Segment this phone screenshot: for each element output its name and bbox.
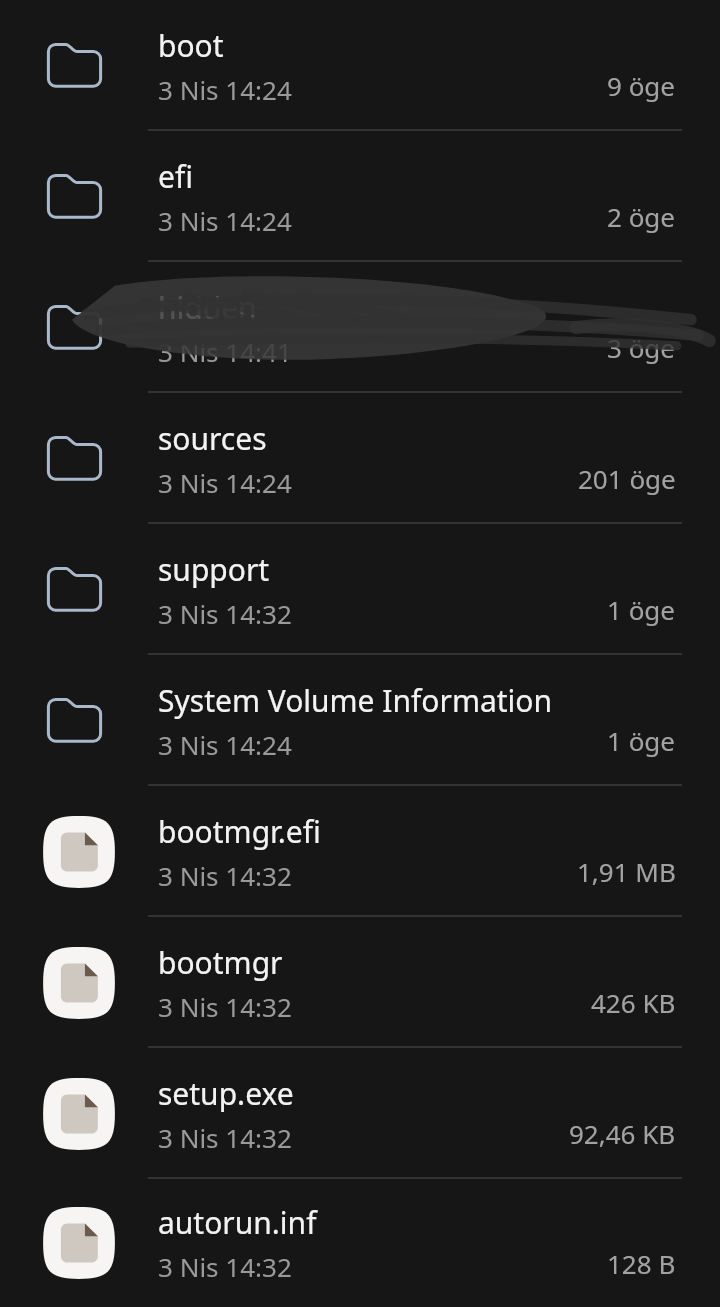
staticText: 1 öge bbox=[607, 723, 676, 758]
staticText: 92,46 KB bbox=[569, 1116, 676, 1151]
staticText: hidden bbox=[158, 287, 257, 328]
staticText: autorun.inf bbox=[158, 1202, 317, 1243]
staticText: 3 Nis 14:24 bbox=[158, 72, 292, 107]
staticText: 3 öge bbox=[607, 330, 676, 365]
staticText: support bbox=[158, 549, 270, 590]
button[interactable]: Folder bbox=[0, 393, 720, 524]
button[interactable]: File bbox=[0, 786, 720, 917]
other: Folder bbox=[43, 30, 115, 102]
staticText: 3 Nis 14:32 bbox=[158, 596, 292, 631]
other: File bbox=[42, 815, 116, 889]
staticText: 1 öge bbox=[607, 592, 676, 627]
button[interactable]: Folder bbox=[0, 655, 720, 786]
staticText: 3 Nis 14:24 bbox=[158, 203, 292, 238]
staticText: 128 B bbox=[607, 1246, 676, 1281]
staticText: 9 öge bbox=[607, 68, 676, 103]
button[interactable]: File bbox=[0, 1179, 720, 1307]
other: Folder bbox=[43, 292, 115, 364]
button[interactable]: Folder bbox=[0, 131, 720, 262]
button[interactable]: Folder bbox=[0, 0, 720, 131]
staticText: bootmgr bbox=[158, 942, 283, 983]
other: File bbox=[42, 946, 116, 1020]
staticText: 2 öge bbox=[607, 199, 676, 234]
staticText: System Volume Information bbox=[158, 680, 553, 721]
staticText: boot bbox=[158, 25, 224, 66]
staticText: 3 Nis 14:32 bbox=[158, 989, 292, 1024]
staticText: 3 Nis 14:32 bbox=[158, 858, 292, 893]
button[interactable]: Folder bbox=[0, 524, 720, 655]
button[interactable]: File bbox=[0, 1048, 720, 1179]
other: File bbox=[42, 1206, 116, 1280]
staticText: 3 Nis 14:41 bbox=[158, 334, 292, 369]
staticText: 3 Nis 14:24 bbox=[158, 465, 292, 500]
other: Folder bbox=[43, 423, 115, 495]
staticText: 3 Nis 14:24 bbox=[158, 727, 292, 762]
staticText: setup.exe bbox=[158, 1073, 294, 1114]
staticText: 3 Nis 14:32 bbox=[158, 1249, 292, 1284]
staticText: 1,91 MB bbox=[577, 854, 676, 889]
staticText: sources bbox=[158, 418, 267, 459]
button[interactable]: Folder bbox=[0, 262, 720, 393]
other: File bbox=[42, 1077, 116, 1151]
staticText: bootmgr.efi bbox=[158, 811, 321, 852]
staticText: 3 Nis 14:32 bbox=[158, 1120, 292, 1155]
other: Folder bbox=[43, 685, 115, 757]
staticText: 426 KB bbox=[591, 985, 676, 1020]
staticText: efi bbox=[158, 156, 193, 197]
other: Folder bbox=[43, 161, 115, 233]
button[interactable]: File bbox=[0, 917, 720, 1048]
other: Folder bbox=[43, 554, 115, 626]
staticText: 201 öge bbox=[578, 461, 676, 496]
